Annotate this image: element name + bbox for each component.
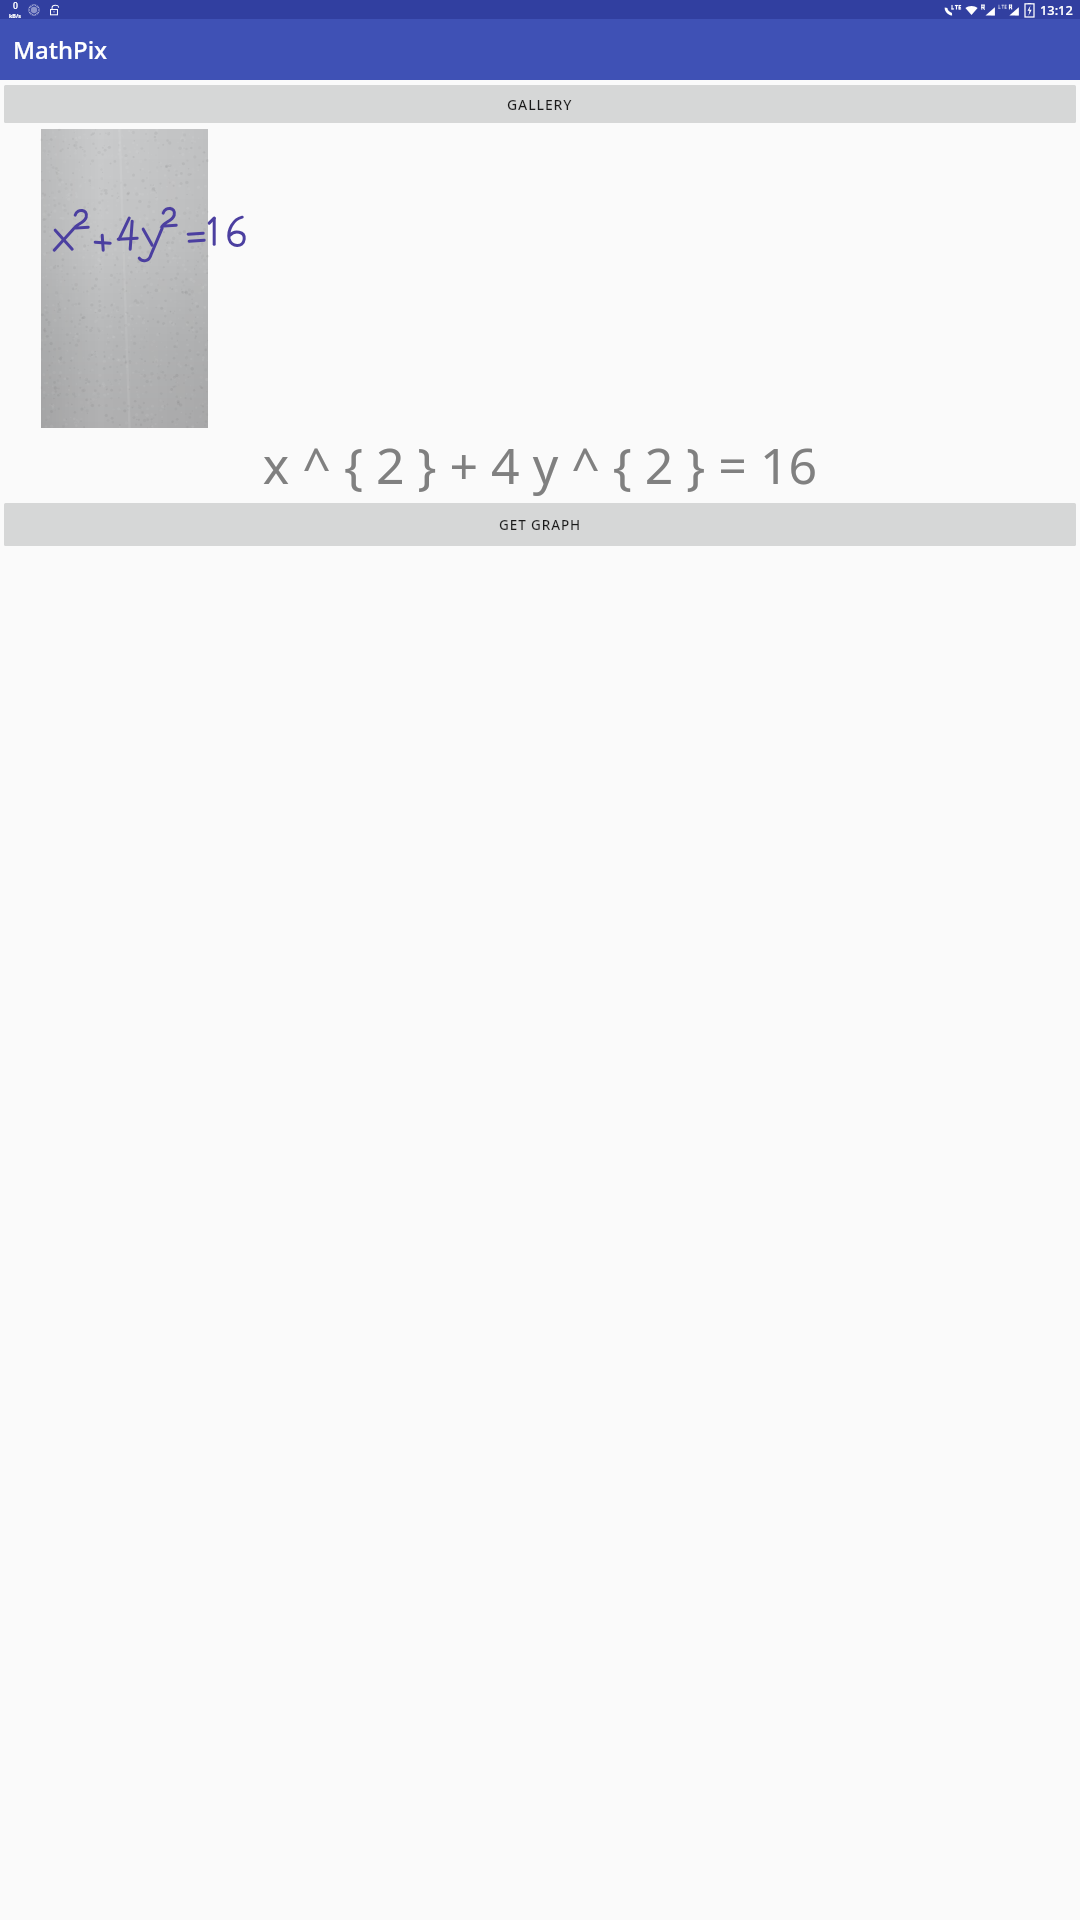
button[interactable]: GALLERY <box>4 85 1076 123</box>
button[interactable]: GET GRAPH <box>4 503 1076 546</box>
staticText: GET GRAPH <box>499 516 582 534</box>
staticText: MathPix <box>13 33 108 66</box>
staticText: x ^ { 2 } + 4 y ^ { 2 } = 16 <box>5 431 1075 499</box>
staticText: 0 <box>13 0 18 12</box>
staticText: GALLERY <box>507 95 573 114</box>
staticText: 13:12 <box>1040 1 1073 18</box>
staticText: kB/s <box>9 12 21 19</box>
other: Captured equation photo <box>41 129 208 428</box>
